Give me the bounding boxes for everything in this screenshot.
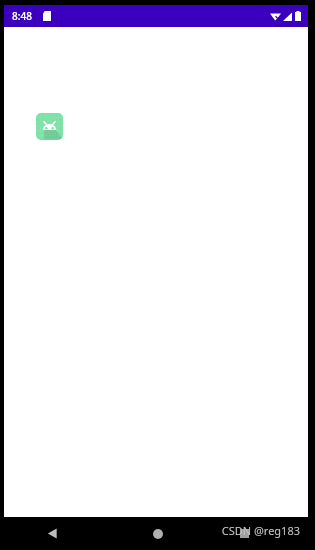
staticText: 8:48	[12, 9, 32, 23]
button[interactable]: App icon	[36, 113, 63, 140]
button[interactable]: Recent apps	[210, 517, 315, 550]
button[interactable]: Back	[0, 517, 105, 550]
staticText: CSDN @reg183	[221, 523, 300, 538]
button[interactable]: Home	[105, 517, 210, 550]
